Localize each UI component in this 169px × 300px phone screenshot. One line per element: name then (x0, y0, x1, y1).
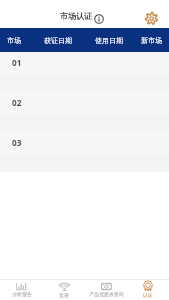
staticText: 竞赛 (59, 292, 69, 298)
staticText: 使用日期 (95, 36, 123, 45)
staticText: 03 (12, 137, 22, 148)
staticText: 02 (12, 97, 22, 108)
button[interactable]: Settings (145, 12, 158, 25)
button[interactable]: 03 (0, 132, 169, 172)
button[interactable]: 竞赛 (43, 280, 85, 300)
staticText: 市场 (7, 36, 21, 45)
button[interactable]: 产品优惠券查询 (85, 280, 127, 300)
button[interactable]: 分析报告 (0, 280, 43, 300)
staticText: 产品优惠券查询 (89, 291, 124, 297)
button[interactable]: 认证 (127, 280, 169, 300)
button[interactable]: 01 (0, 52, 169, 92)
staticText: 认证 (143, 292, 153, 298)
staticText: 市场认证 (60, 11, 92, 21)
button[interactable]: Info (94, 14, 104, 24)
staticText: 获证日期 (44, 36, 72, 45)
button[interactable]: 02 (0, 92, 169, 132)
staticText: 分析报告 (12, 291, 32, 297)
staticText: 新市场 (141, 36, 162, 45)
staticText: 01 (12, 57, 22, 68)
